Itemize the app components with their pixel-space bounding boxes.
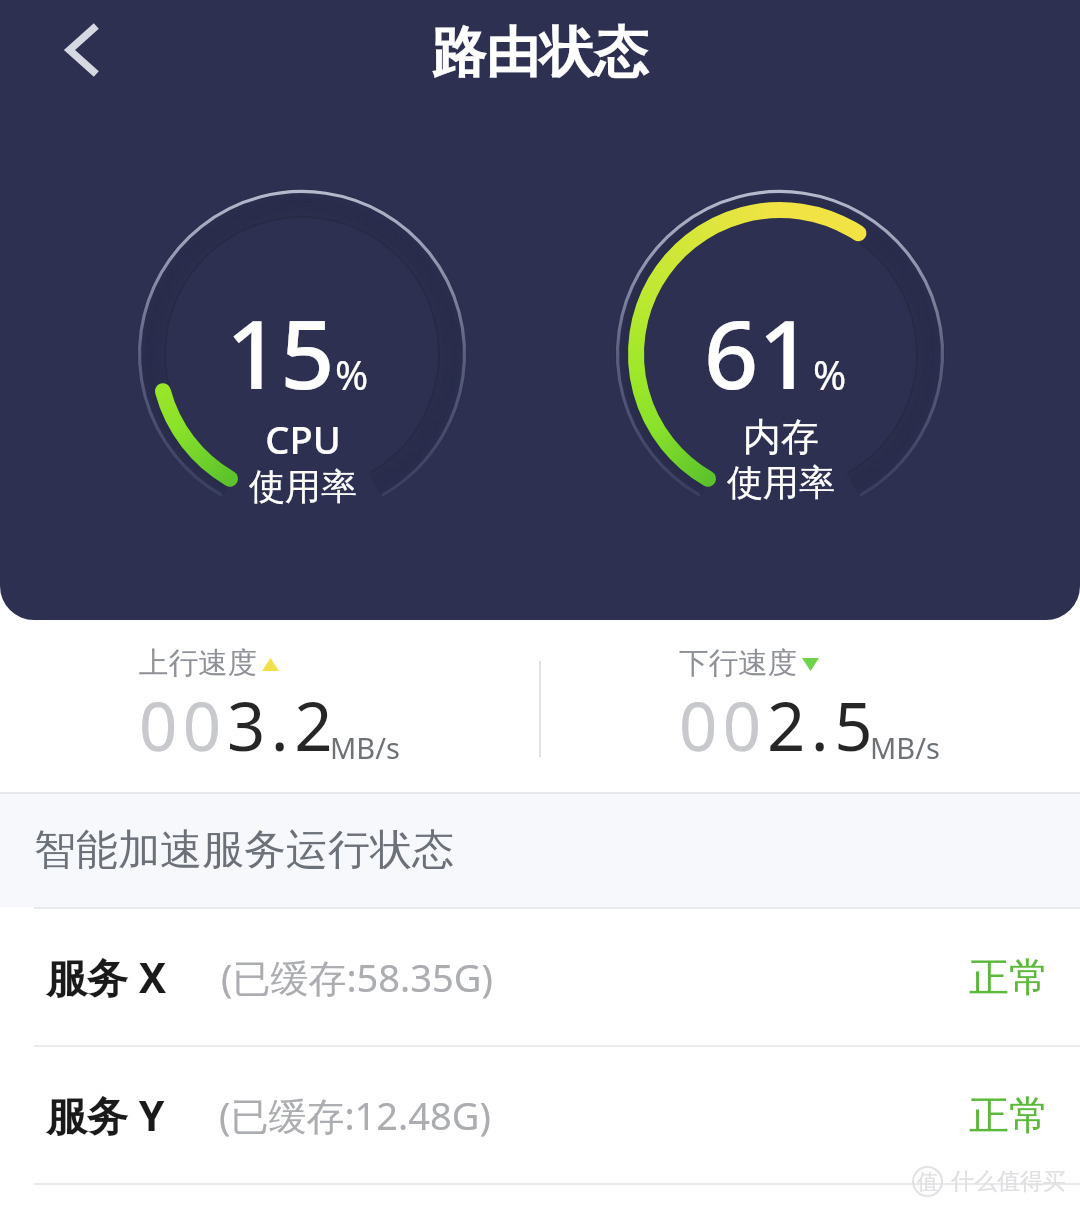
staticText: 3.2 (227, 679, 339, 770)
staticText: 路由状态 (432, 19, 648, 87)
staticText: MB/s (330, 728, 400, 767)
staticText: 服务 X (46, 949, 167, 1005)
staticText: 正常 (969, 952, 1049, 1002)
staticText: 什么值得买 (951, 1167, 1066, 1196)
staticText: 智能加速服务运行状态 (34, 824, 454, 877)
staticText: 00 (679, 679, 767, 770)
button[interactable]: 服务 Y (0, 1047, 1080, 1183)
staticText: 下行速度 (679, 645, 797, 682)
staticText: % (813, 347, 847, 401)
staticText: MB/s (870, 728, 940, 767)
staticText: 正常 (969, 1090, 1049, 1140)
staticText: 使用率 (727, 460, 835, 505)
staticText: 服务 Y (46, 1087, 165, 1143)
button[interactable]: Back (45, 14, 117, 86)
staticText: 00 (139, 679, 227, 770)
staticText: 使用率 (249, 464, 357, 509)
button[interactable]: 服务 X (0, 909, 1080, 1045)
staticText: (已缓存:58.35G) (221, 951, 493, 1003)
staticText: CPU (265, 413, 341, 465)
staticText: 61 (704, 287, 813, 416)
staticText: (已缓存:12.48G) (219, 1089, 491, 1141)
staticText: 2.5 (767, 679, 879, 770)
staticText: 内存 (743, 413, 819, 461)
staticText: 15 (226, 287, 335, 416)
staticText: % (335, 347, 369, 401)
staticText: 值 (917, 1169, 938, 1195)
staticText: 上行速度 (139, 645, 257, 682)
